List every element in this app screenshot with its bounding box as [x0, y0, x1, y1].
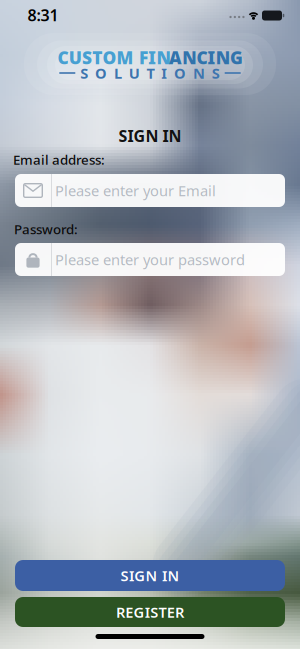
button[interactable]: REGISTER — [15, 597, 285, 627]
staticText: Please enter your Email — [55, 181, 216, 200]
staticText: SOLUTIONS — [80, 63, 220, 83]
staticText: CUSTOM FIN — [58, 46, 170, 69]
staticText: ANCING — [169, 46, 243, 69]
staticText: SIGN IN — [121, 566, 179, 585]
staticText: Password: — [14, 220, 78, 238]
button[interactable]: SIGN IN — [15, 560, 285, 591]
staticText: SIGN IN — [118, 125, 181, 146]
staticText: 8:31 — [27, 4, 58, 26]
staticText: Email address: — [13, 151, 105, 168]
staticText: REGISTER — [116, 602, 184, 622]
staticText: Please enter your password — [55, 250, 245, 269]
